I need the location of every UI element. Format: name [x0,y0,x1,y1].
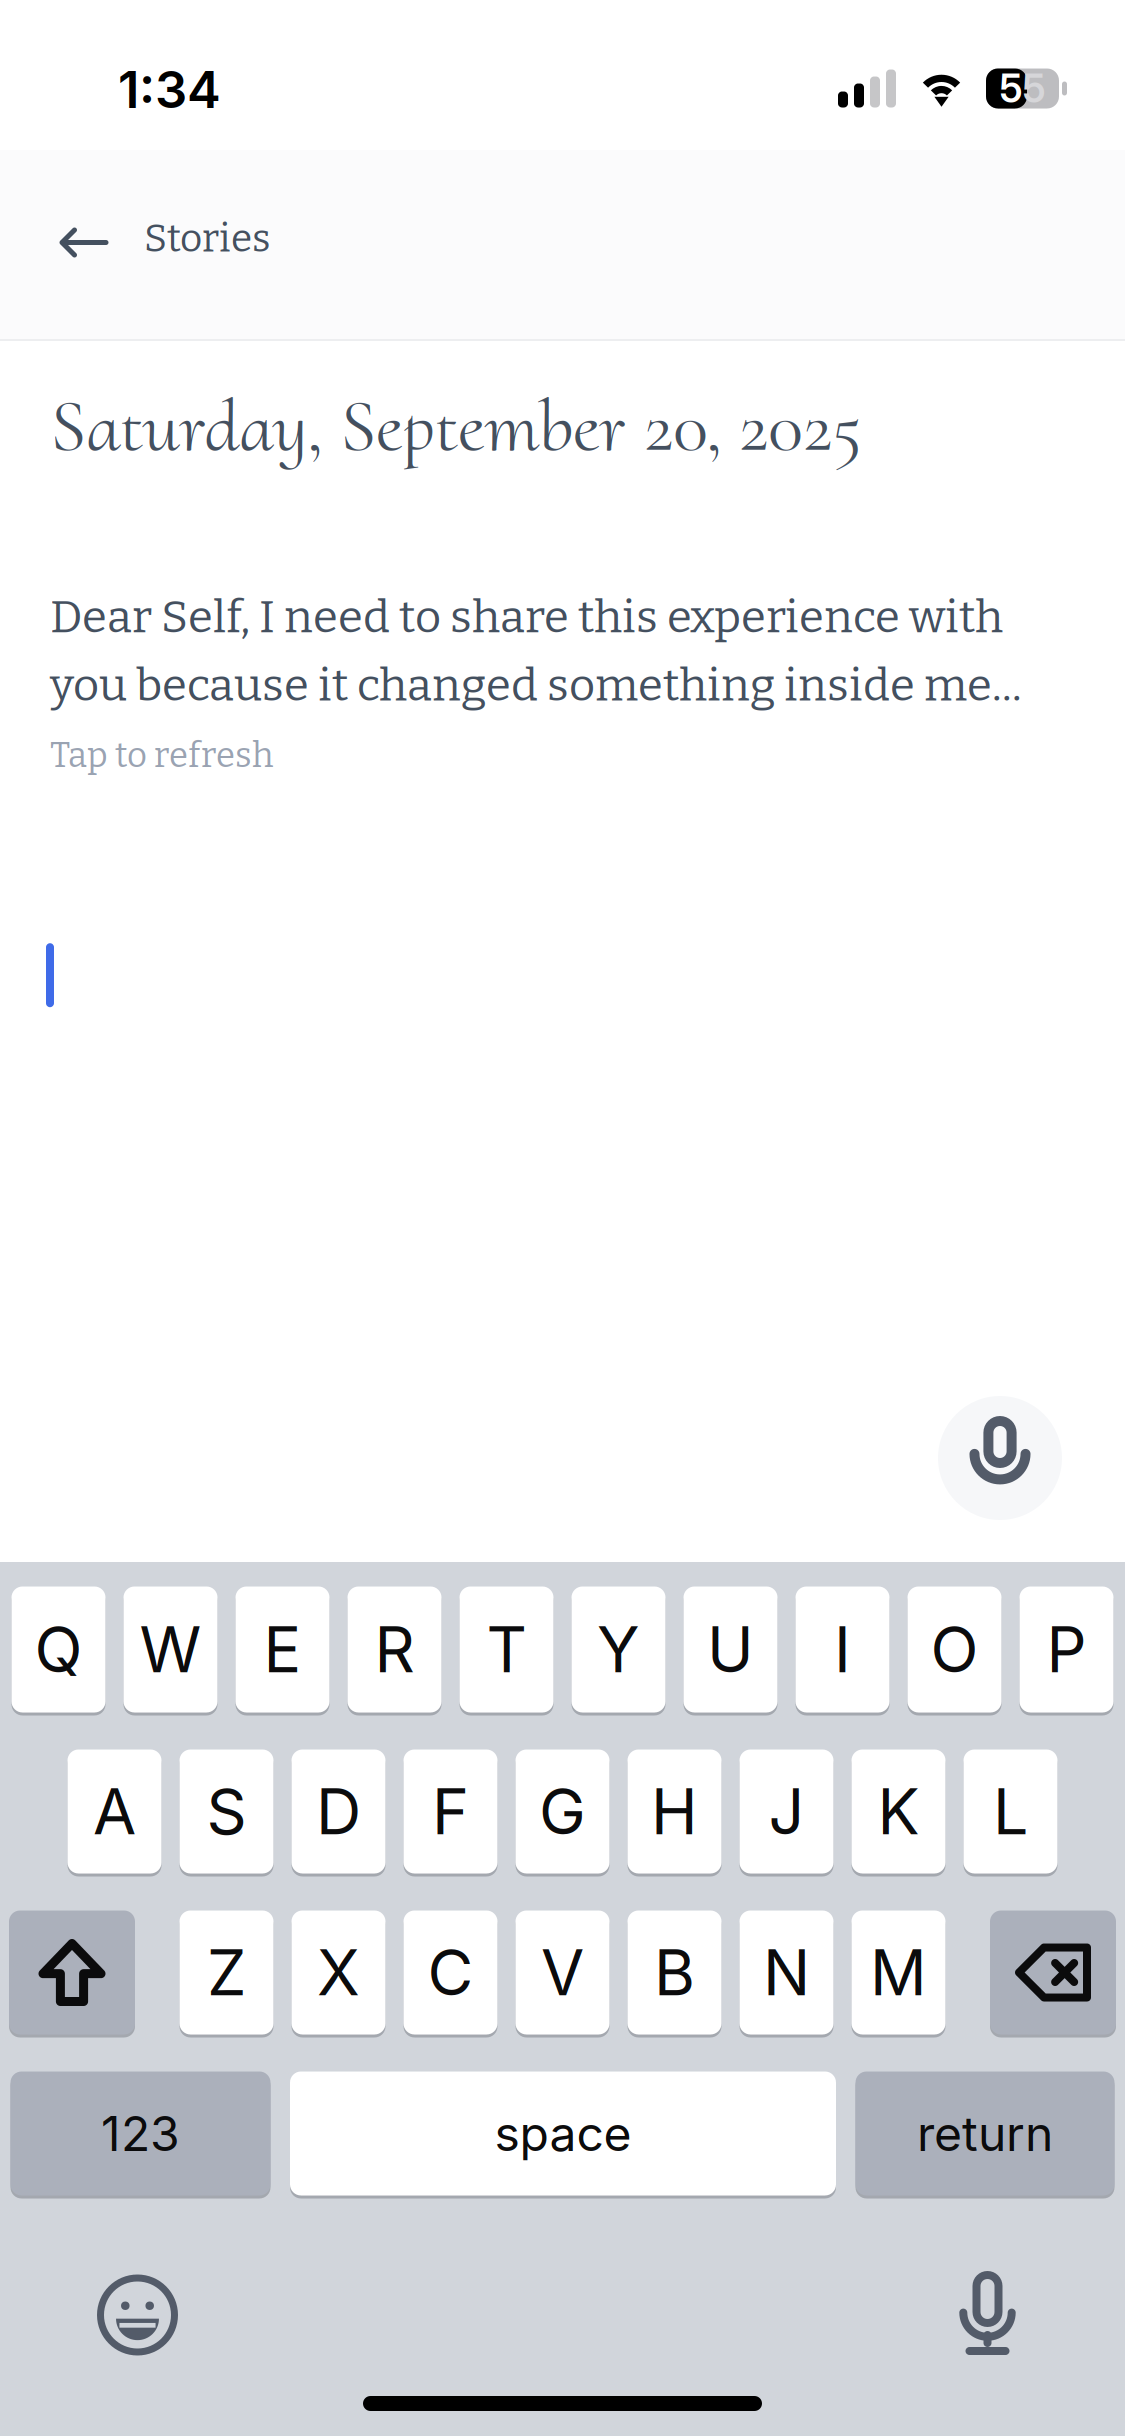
staticText: D [316,1774,361,1849]
staticText: Z [207,1935,246,2010]
staticText: X [317,1935,360,2010]
button[interactable]: U [683,1585,777,1714]
staticText: T [486,1612,526,1687]
staticText: E [263,1612,301,1687]
button[interactable]: K [851,1748,945,1875]
button[interactable]: N [739,1909,833,2036]
button[interactable]: H [627,1748,721,1875]
staticText: 5 [999,65,1022,112]
staticText: Tap to refresh [50,735,274,776]
button[interactable]: Q [11,1585,105,1714]
staticText: L [993,1774,1028,1849]
button[interactable]: Delete [990,1909,1116,2036]
staticText: V [541,1935,584,2010]
staticText: B [654,1935,695,2010]
button[interactable]: T [459,1585,553,1714]
button[interactable]: L [963,1748,1057,1875]
staticText: Y [597,1612,640,1687]
button[interactable]: R [347,1585,441,1714]
staticText: I [834,1612,851,1687]
button[interactable]: V [515,1909,609,2036]
staticText: N [763,1935,810,2010]
button[interactable]: Dictate [938,1396,1062,1520]
staticText: M [870,1935,927,2010]
staticText: A [93,1774,136,1849]
button[interactable]: Dictation [897,2260,1077,2370]
button[interactable]: E [235,1585,329,1714]
staticText: G [539,1774,586,1849]
button[interactable]: return [855,2070,1114,2197]
staticText: return [917,2104,1053,2163]
button[interactable]: Y [571,1585,665,1714]
button[interactable]: P [1019,1585,1113,1714]
button[interactable]: X [291,1909,385,2036]
staticText: Q [34,1612,82,1687]
button[interactable]: C [403,1909,497,2036]
button[interactable]: G [515,1748,609,1875]
button[interactable]: A [67,1748,161,1875]
button[interactable]: M [851,1909,945,2036]
button[interactable]: W [123,1585,217,1714]
button[interactable]: D [291,1748,385,1875]
button[interactable]: space [290,2070,836,2197]
staticText: 123 [101,2104,180,2163]
staticText: R [374,1612,414,1687]
staticText: C [427,1935,473,2010]
button[interactable]: Shift [9,1909,135,2036]
staticText: Saturday, September 20, 2025 [50,382,862,471]
button[interactable]: B [627,1909,721,2036]
button[interactable]: I [795,1585,889,1714]
staticText: S [206,1774,246,1849]
button[interactable]: Tap to refresh [50,735,274,776]
button[interactable]: F [403,1748,497,1875]
staticText: P [1046,1612,1086,1687]
button[interactable]: Stories [0,150,296,338]
button[interactable]: Emoji [47,2260,227,2370]
staticText: F [432,1774,469,1849]
button[interactable]: 123 [10,2070,270,2197]
staticText: K [877,1774,919,1849]
staticText: Stories [144,215,270,262]
staticText: 5 [1022,65,1045,112]
staticText: J [768,1774,804,1849]
staticText: U [707,1612,754,1687]
button[interactable]: O [907,1585,1001,1714]
button[interactable]: S [179,1748,273,1875]
staticText: O [930,1612,978,1687]
staticText: Dear Self, I need to share this experien… [50,590,1022,713]
button[interactable]: J [739,1748,833,1875]
staticText: space [494,2104,631,2163]
button[interactable]: Z [179,1909,273,2036]
staticText: 1:34 [118,59,221,120]
staticText: W [139,1612,201,1687]
staticText: H [651,1774,698,1849]
